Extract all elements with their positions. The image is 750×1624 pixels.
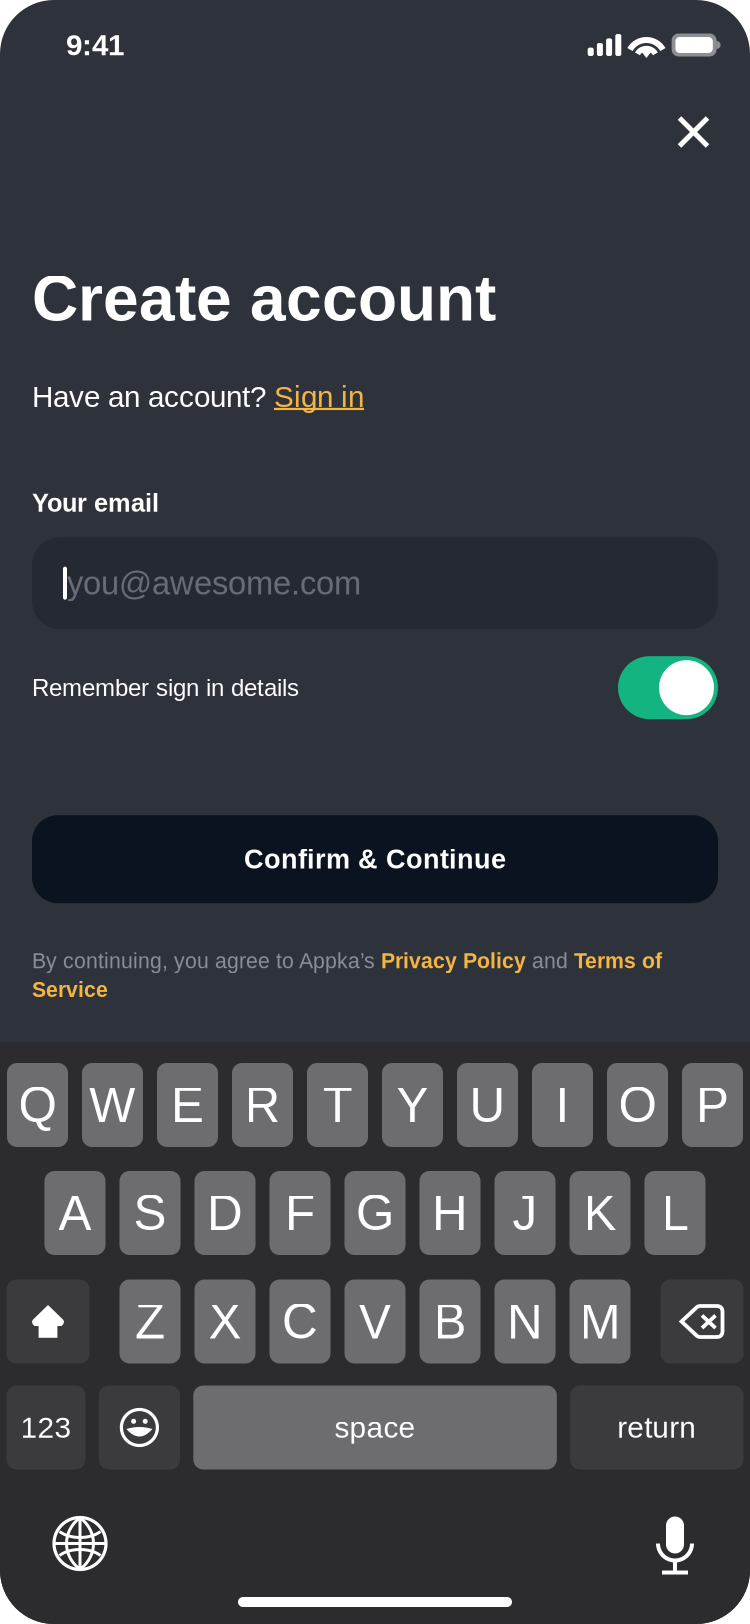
staticText: V (358, 1294, 391, 1349)
button[interactable]: Confirm & Continue (32, 815, 718, 903)
button[interactable]: O (607, 1063, 668, 1147)
button[interactable]: Remember sign in details (618, 656, 718, 719)
button[interactable]: A (44, 1171, 105, 1255)
staticText: 123 (20, 1411, 71, 1444)
staticText: C (282, 1294, 318, 1349)
button[interactable]: F (269, 1171, 330, 1255)
button[interactable]: Z (119, 1279, 180, 1363)
staticText: space (334, 1411, 415, 1444)
staticText: Remember sign in details (32, 674, 299, 701)
button[interactable]: C (269, 1279, 330, 1363)
button[interactable]: E (157, 1063, 218, 1147)
staticText: By continuing, you agree to Appka’s Priv… (32, 949, 662, 1002)
staticText: G (356, 1185, 394, 1240)
staticText: you@awesome.com (67, 565, 361, 601)
button[interactable]: W (82, 1063, 143, 1147)
staticText: Z (135, 1294, 165, 1349)
staticText: Confirm & Continue (244, 844, 506, 874)
staticText: W (89, 1077, 136, 1132)
button[interactable]: T (307, 1063, 368, 1147)
button[interactable]: P (682, 1063, 743, 1147)
staticText: F (285, 1185, 315, 1240)
staticText: J (512, 1185, 537, 1240)
staticText: U (469, 1077, 505, 1132)
staticText: K (583, 1185, 616, 1240)
button[interactable]: L (644, 1171, 705, 1255)
staticText: P (696, 1077, 729, 1132)
staticText: O (618, 1077, 656, 1132)
staticText: I (555, 1077, 569, 1132)
staticText: M (579, 1294, 620, 1349)
button[interactable]: V (344, 1279, 405, 1363)
button[interactable]: D (194, 1171, 255, 1255)
staticText: S (133, 1185, 166, 1240)
staticText: Q (18, 1077, 56, 1132)
button[interactable]: Shift (6, 1279, 89, 1363)
button[interactable]: return (570, 1385, 743, 1469)
staticText: L (661, 1185, 688, 1240)
button[interactable]: X (194, 1279, 255, 1363)
button[interactable]: Q (7, 1063, 68, 1147)
button[interactable]: Close (658, 90, 735, 158)
staticText: B (433, 1294, 466, 1349)
staticText: Y (396, 1077, 429, 1132)
staticText: A (58, 1185, 91, 1240)
button[interactable]: Emoji (99, 1385, 180, 1469)
button[interactable]: Y (382, 1063, 443, 1147)
staticText: X (208, 1294, 241, 1349)
button[interactable]: R (232, 1063, 293, 1147)
staticText: E (171, 1077, 204, 1132)
staticText: return (617, 1411, 696, 1444)
button[interactable]: Next keyboard (50, 1513, 110, 1573)
staticText: Create account (32, 263, 496, 334)
button[interactable]: M (569, 1279, 630, 1363)
button[interactable]: space (193, 1385, 557, 1469)
button[interactable]: Backspace (660, 1279, 743, 1363)
button[interactable]: I (532, 1063, 593, 1147)
staticText: T (322, 1077, 352, 1132)
staticText: R (244, 1077, 280, 1132)
button[interactable]: B (419, 1279, 480, 1363)
staticText: Your email (32, 489, 159, 517)
button[interactable]: 123 (6, 1385, 85, 1469)
staticText: D (207, 1185, 243, 1240)
staticText: N (507, 1294, 543, 1349)
button[interactable]: G (344, 1171, 405, 1255)
staticText: H (432, 1185, 468, 1240)
button[interactable]: Dictate (645, 1513, 705, 1573)
button[interactable]: U (457, 1063, 518, 1147)
staticText: 9:41 (66, 28, 124, 62)
button[interactable]: J (494, 1171, 555, 1255)
staticText: Have an account? Sign in (32, 380, 364, 413)
button[interactable]: K (569, 1171, 630, 1255)
button[interactable]: S (119, 1171, 180, 1255)
button[interactable]: N (494, 1279, 555, 1363)
button[interactable]: H (419, 1171, 480, 1255)
